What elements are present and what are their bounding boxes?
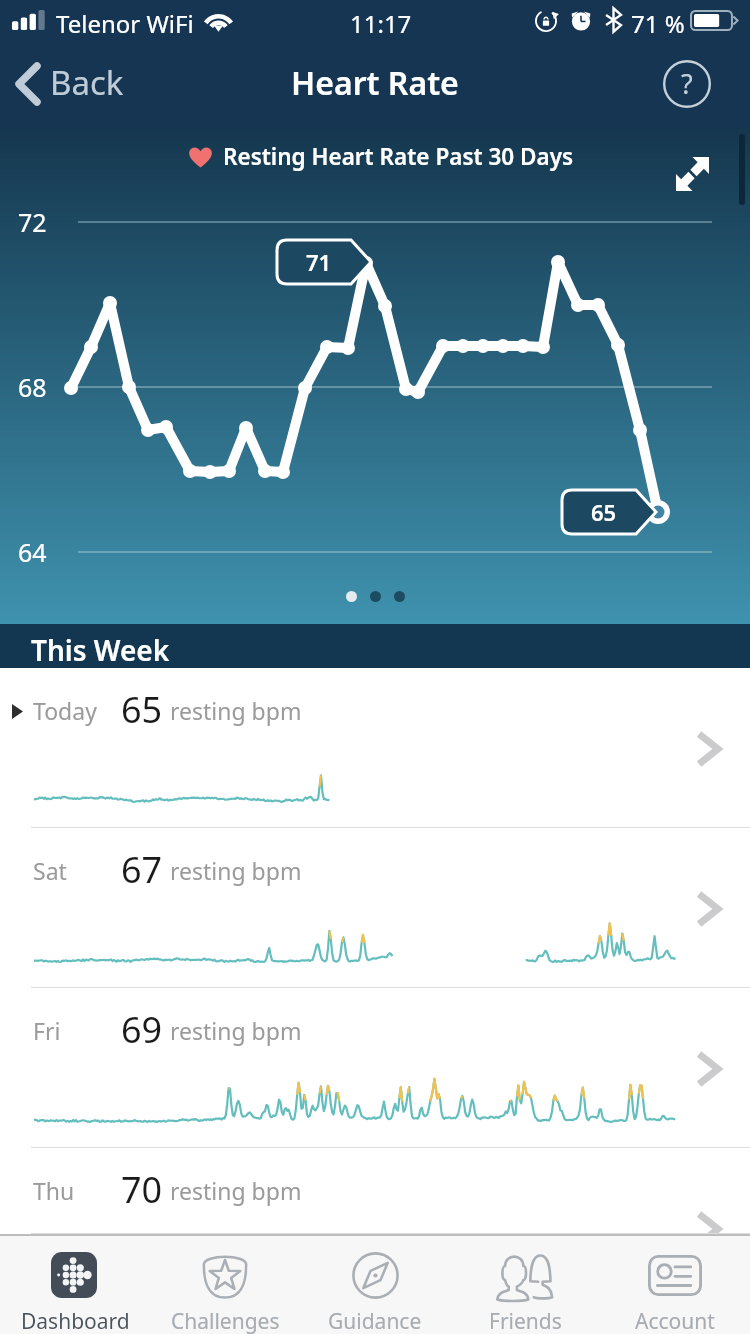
staticText: 69: [121, 1005, 163, 1054]
staticText: 64: [18, 535, 47, 569]
staticText: resting bpm: [170, 855, 302, 886]
staticText: Today: [33, 695, 97, 726]
button[interactable]: Today: [0, 668, 750, 828]
staticText: Dashboard: [21, 1307, 130, 1334]
staticText: Challenges: [171, 1307, 280, 1334]
staticText: 71 %: [631, 7, 685, 40]
button[interactable]: Back: [0, 40, 142, 128]
staticText: Thu: [33, 1175, 75, 1206]
button[interactable]: Sat: [0, 828, 750, 988]
staticText: resting bpm: [170, 695, 302, 726]
staticText: Resting Heart Rate Past 30 Days: [223, 141, 574, 172]
staticText: 67: [121, 845, 163, 894]
staticText: 72: [18, 205, 47, 239]
staticText: Fri: [33, 1015, 61, 1046]
staticText: Sat: [33, 855, 67, 886]
staticText: Account: [635, 1307, 715, 1334]
button[interactable]: Guidance: [300, 1236, 450, 1334]
staticText: 71: [306, 247, 332, 277]
button[interactable]: Friends: [450, 1236, 600, 1334]
staticText: ?: [681, 65, 693, 102]
button[interactable]: Dashboard: [0, 1236, 150, 1334]
staticText: 65: [591, 497, 617, 527]
staticText: Heart Rate: [291, 61, 459, 105]
staticText: Back: [50, 60, 124, 105]
staticText: This Week: [31, 631, 170, 669]
staticText: Guidance: [328, 1307, 422, 1334]
staticText: 70: [121, 1165, 163, 1214]
staticText: resting bpm: [170, 1015, 302, 1046]
staticText: 65: [121, 685, 163, 734]
button[interactable]: Account: [600, 1236, 750, 1334]
staticText: 68: [18, 370, 47, 404]
staticText: resting bpm: [170, 1175, 302, 1206]
staticText: Telenor WiFi: [56, 7, 194, 40]
staticText: Friends: [489, 1307, 562, 1334]
button[interactable]: Challenges: [150, 1236, 300, 1334]
button[interactable]: Expand chart: [662, 144, 722, 204]
staticText: 11:17: [350, 7, 412, 40]
button[interactable]: Thu: [0, 1148, 750, 1234]
button[interactable]: Help: [658, 55, 716, 113]
button[interactable]: Fri: [0, 988, 750, 1148]
